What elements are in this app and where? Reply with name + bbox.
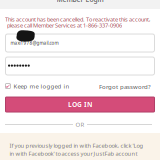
staticText: If you previously logged in with Faceboo… xyxy=(9,141,143,149)
staticText: maxi1978@gmail.com xyxy=(10,40,58,46)
staticText: Keep me logged in xyxy=(13,82,69,90)
staticText: Member Login xyxy=(56,0,103,4)
staticText: please call Member Services at 1-866-337… xyxy=(7,21,122,29)
staticText: OR xyxy=(75,120,84,129)
staticText: Forgot password? xyxy=(99,82,151,91)
button[interactable]: Forgot password? xyxy=(91,82,151,91)
staticText: in with Facebook' to access your JustFab… xyxy=(9,149,137,157)
button[interactable]: LOG IN xyxy=(5,97,154,112)
staticText: LOG IN xyxy=(68,100,92,109)
button[interactable]: Keep me logged in xyxy=(5,82,69,90)
staticText: This account has been cancelled. To reac… xyxy=(5,15,151,23)
